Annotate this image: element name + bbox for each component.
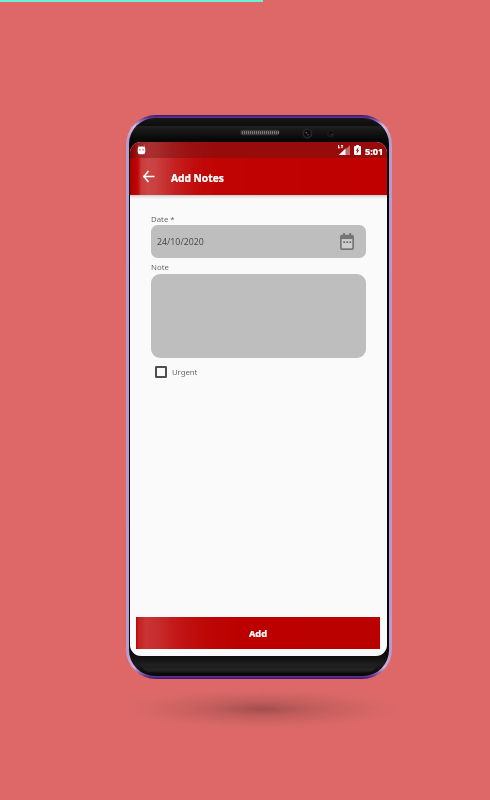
- staticText: 24/10/2020: [157, 236, 204, 248]
- button[interactable]: Add: [136, 617, 380, 649]
- button[interactable]: Urgent: [155, 366, 198, 378]
- button[interactable]: [151, 274, 366, 358]
- staticText: Add: [249, 627, 267, 640]
- staticText: Date *: [151, 214, 175, 225]
- staticText: Note: [151, 262, 169, 273]
- button[interactable]: Back: [139, 167, 158, 186]
- staticText: Add Notes: [171, 171, 224, 185]
- button[interactable]: 24/10/2020: [151, 225, 366, 258]
- staticText: Urgent: [172, 367, 198, 377]
- staticText: 5:01: [365, 145, 384, 158]
